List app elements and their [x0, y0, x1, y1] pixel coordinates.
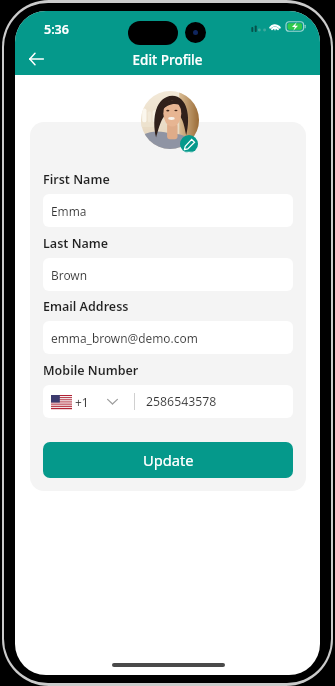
button[interactable]: Back [21, 46, 52, 72]
staticText: Emma [51, 203, 87, 219]
button[interactable]: Edit profile photo [180, 135, 198, 153]
staticText: Last Name [43, 235, 109, 252]
staticText: First Name [43, 171, 110, 188]
staticText: Edit Profile [15, 51, 320, 69]
staticText: Email Address [43, 298, 129, 315]
staticText: 2586543578 [146, 393, 217, 410]
staticText: +1 [75, 394, 89, 410]
button[interactable]: Update [43, 442, 293, 478]
staticText: Update [143, 450, 194, 470]
button[interactable]: Emma [43, 194, 293, 227]
staticText: Mobile Number [43, 362, 139, 379]
staticText: emma_brown@demo.com [51, 330, 198, 346]
staticText: 5:36 [44, 21, 69, 38]
button[interactable]: +1 [43, 385, 293, 418]
button[interactable]: Brown [43, 258, 293, 291]
button[interactable]: emma_brown@demo.com [43, 321, 293, 354]
staticText: Brown [51, 267, 88, 283]
